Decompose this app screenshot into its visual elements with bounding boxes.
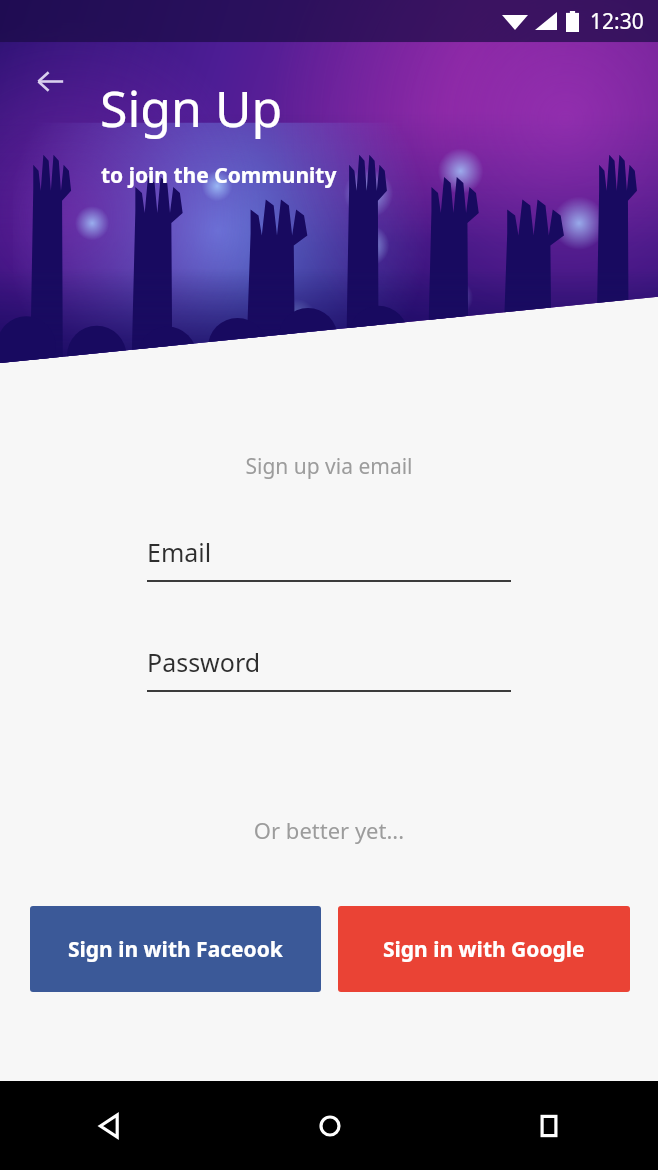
button[interactable]: Home [220,1081,439,1170]
button[interactable]: Back [0,1081,220,1170]
staticText: to join the Community [101,161,337,190]
button[interactable]: Email [147,535,511,582]
button[interactable]: Recents [439,1081,658,1170]
staticText: Or better yet... [0,815,658,845]
staticText: Sign Up [100,74,283,142]
staticText: Email [147,535,212,569]
staticText: Password [147,645,261,679]
button[interactable]: Sign in with Google [338,906,630,992]
staticText: Sign up via email [0,452,658,481]
button[interactable]: Password [147,645,511,692]
staticText: Sign in with Google [383,935,585,964]
button[interactable]: Back [26,57,74,105]
staticText: 12:30 [590,7,644,36]
button[interactable]: Sign in with Faceook [30,906,321,992]
staticText: Sign in with Faceook [68,935,283,964]
